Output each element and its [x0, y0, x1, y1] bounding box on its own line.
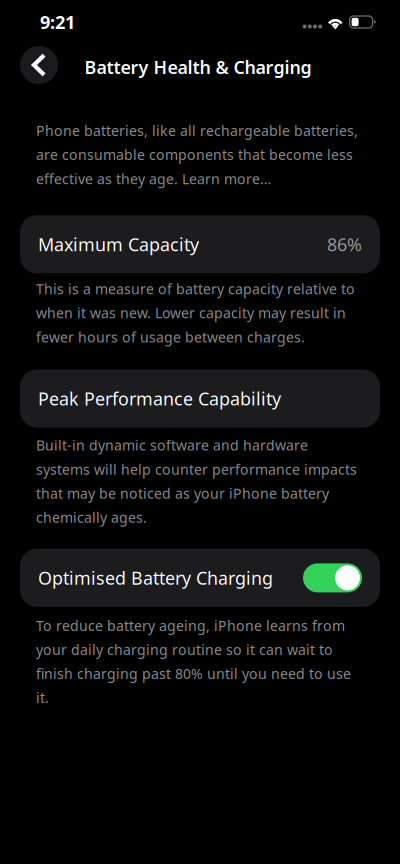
button[interactable]: Back [20, 46, 58, 84]
staticText: 86% [327, 232, 362, 256]
staticText: Phone batteries, like all rechargeable b… [36, 121, 358, 188]
button[interactable]: Optimised Battery Charging [20, 549, 380, 607]
staticText: 9:21 [40, 10, 75, 34]
staticText: To reduce battery ageing, iPhone learns … [36, 616, 351, 707]
button[interactable]: Peak Performance Capability [20, 369, 380, 427]
button[interactable]: Maximum Capacity [20, 215, 380, 273]
staticText: Maximum Capacity [38, 232, 199, 256]
staticText: Peak Performance Capability [38, 386, 281, 411]
staticText: Optimised Battery Charging [38, 566, 273, 590]
staticText: Battery Health & Charging [84, 55, 311, 79]
staticText: Built-in dynamic software and hardware s… [36, 435, 357, 527]
staticText: This is a measure of battery capacity re… [36, 279, 355, 347]
